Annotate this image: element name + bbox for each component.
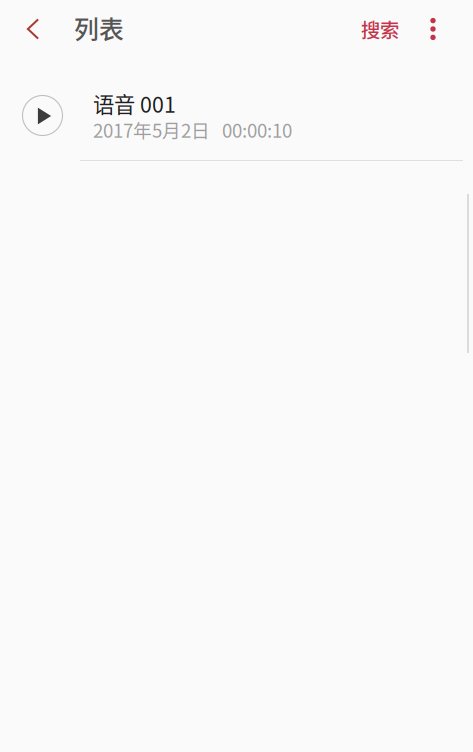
staticText: 2017年5月2日 00:00:10	[93, 116, 292, 143]
button[interactable]: 语音 001	[0, 58, 473, 161]
button[interactable]: 搜索	[349, 0, 411, 58]
staticText: 搜索	[361, 15, 399, 43]
staticText: 语音 001	[93, 88, 176, 119]
staticText: 列表	[74, 10, 124, 46]
button[interactable]: More options	[412, 0, 454, 58]
button[interactable]: 列表	[74, 0, 144, 57]
button[interactable]: Back	[5, 0, 61, 58]
